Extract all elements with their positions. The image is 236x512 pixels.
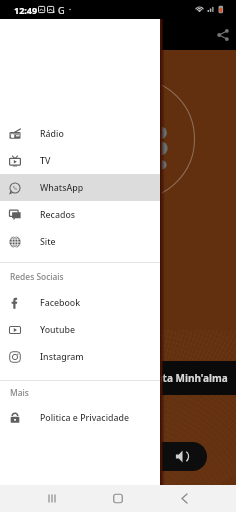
button[interactable]: Instagram — [0, 343, 160, 370]
staticText: Site — [40, 236, 56, 248]
staticText: Politica e Privacidade — [40, 412, 130, 424]
button[interactable]: Rádio — [0, 120, 160, 147]
staticText: G — [58, 4, 65, 16]
button[interactable]: Facebook — [0, 289, 160, 316]
button[interactable]: WhatsApp — [0, 174, 160, 201]
button[interactable]: Share — [210, 22, 236, 48]
staticText: Mais — [10, 387, 29, 398]
staticText: Som e Palavra - Bandeja De Prata Minh'al… — [9, 371, 228, 385]
button[interactable]: TV — [0, 147, 160, 174]
staticText: 12:49 — [14, 4, 38, 16]
staticText: Instagram — [40, 351, 84, 363]
staticText: Youtube — [40, 324, 75, 336]
button[interactable]: Site — [0, 228, 160, 255]
staticText: WhatsApp — [40, 182, 84, 194]
staticText: Facebook — [40, 297, 81, 309]
staticText: TV — [40, 155, 51, 167]
button[interactable]: Youtube — [0, 316, 160, 343]
staticText: Recados — [40, 209, 76, 221]
staticText: Redes Sociais — [10, 271, 64, 282]
button[interactable]: Politica e Privacidade — [0, 404, 160, 431]
button[interactable]: Volume — [140, 442, 207, 471]
button[interactable]: Recados — [0, 201, 160, 228]
staticText: Rádio — [40, 128, 64, 140]
